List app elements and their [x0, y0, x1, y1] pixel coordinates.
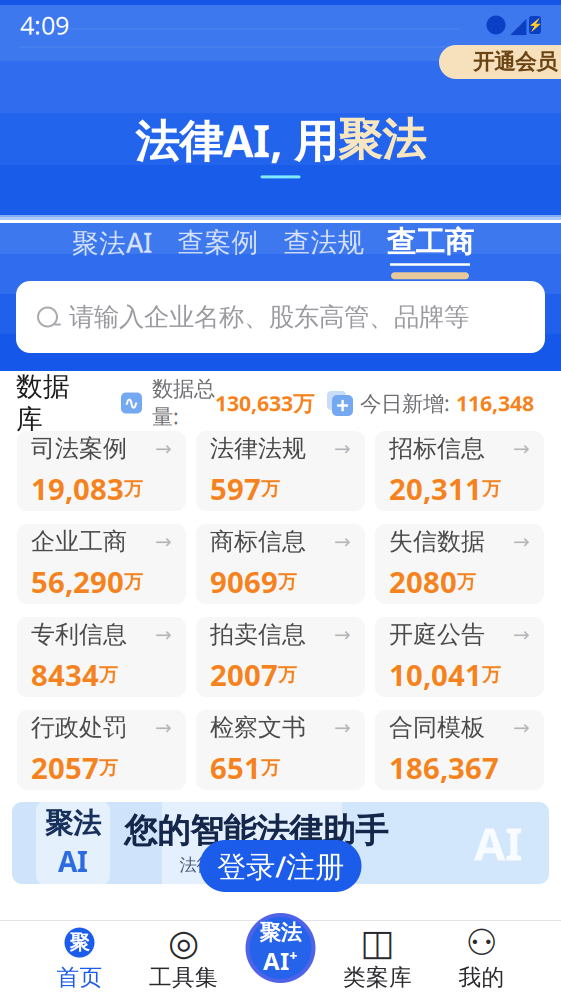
- button[interactable]: 检察文书: [196, 710, 365, 790]
- staticText: ∿: [123, 392, 139, 414]
- staticText: 数据总量:: [152, 376, 215, 430]
- staticText: ◎: [168, 922, 199, 963]
- staticText: 8434: [31, 655, 99, 694]
- button[interactable]: 查法规: [274, 226, 374, 278]
- staticText: →: [513, 716, 530, 739]
- button[interactable]: 合同模板: [375, 710, 544, 790]
- staticText: 今日新增:: [360, 389, 456, 417]
- staticText: 聚法: [338, 113, 426, 167]
- staticText: 企业工商: [31, 527, 127, 556]
- button[interactable]: ⚇: [429, 922, 533, 996]
- staticText: 专利信息: [31, 620, 127, 649]
- staticText: 56,290: [31, 562, 124, 601]
- staticText: →: [334, 623, 351, 646]
- staticText: 请输入企业名称、股东高管、品牌等: [69, 301, 469, 332]
- staticText: 查法规: [283, 226, 364, 259]
- staticText: 开通会员: [473, 49, 557, 75]
- staticText: +: [336, 390, 349, 420]
- staticText: 19,083: [31, 469, 124, 508]
- button[interactable]: 司法案例: [17, 431, 186, 511]
- button[interactable]: 拍卖信息: [196, 617, 365, 697]
- button[interactable]: 聚法: [12, 802, 549, 884]
- staticText: →: [155, 437, 172, 460]
- button[interactable]: 行政处罚: [17, 710, 186, 790]
- staticText: →: [513, 437, 530, 460]
- staticText: 失信数据: [389, 527, 485, 556]
- staticText: →: [155, 530, 172, 553]
- staticText: 2080: [389, 562, 457, 601]
- button[interactable]: 商标信息: [196, 524, 365, 604]
- staticText: 法律法规: [210, 434, 306, 463]
- button[interactable]: 查工商: [380, 224, 480, 280]
- button[interactable]: 法律法规: [196, 431, 365, 511]
- staticText: 法律人的智能工作台: [179, 854, 332, 876]
- staticText: ◢: [510, 13, 526, 37]
- staticText: 4:09: [20, 8, 69, 42]
- staticText: →: [334, 530, 351, 553]
- staticText: 186,367: [389, 748, 499, 787]
- staticText: 类案库: [343, 964, 412, 991]
- staticText: →: [334, 716, 351, 739]
- button[interactable]: 企业工商: [17, 524, 186, 604]
- staticText: 聚: [69, 930, 89, 955]
- button[interactable]: 登录/注册: [199, 840, 361, 892]
- button[interactable]: 聚: [27, 922, 131, 996]
- staticText: 拍卖信息: [210, 620, 306, 649]
- staticText: →: [334, 437, 351, 460]
- staticText: 招标信息: [389, 434, 485, 463]
- staticText: 检察文书: [210, 713, 306, 742]
- staticText: 万: [457, 570, 476, 593]
- staticText: 万: [482, 477, 501, 500]
- button[interactable]: 开通会员: [439, 45, 561, 79]
- staticText: 万: [261, 756, 280, 779]
- staticText: 651: [210, 748, 261, 787]
- staticText: 9069: [210, 562, 278, 601]
- staticText: →: [155, 623, 172, 646]
- staticText: 10,041: [389, 655, 482, 694]
- staticText: 2057: [31, 748, 99, 787]
- staticText: →: [513, 530, 530, 553]
- button[interactable]: 开庭公告: [375, 617, 544, 697]
- staticText: 您的智能法律助手: [124, 810, 388, 851]
- staticText: 130,633万: [215, 389, 314, 417]
- staticText: 行政处罚: [31, 713, 127, 742]
- button[interactable]: 失信数据: [375, 524, 544, 604]
- staticText: 法律AI, 用: [135, 111, 338, 169]
- button[interactable]: 请输入企业名称、股东高管、品牌等: [16, 281, 545, 353]
- staticText: 万: [99, 756, 118, 779]
- staticText: AI: [58, 843, 88, 880]
- staticText: →: [155, 716, 172, 739]
- staticText: 聚法: [259, 919, 301, 946]
- staticText: 查工商: [386, 224, 473, 260]
- staticText: 合同模板: [389, 713, 485, 742]
- button[interactable]: ◎: [131, 922, 235, 996]
- staticText: 116,348: [456, 389, 534, 417]
- staticText: AI: [474, 813, 523, 873]
- button[interactable]: 聚法 AI+: [240, 908, 320, 988]
- staticText: 司法案例: [31, 434, 127, 463]
- staticText: 万: [99, 663, 118, 686]
- button[interactable]: 专利信息: [17, 617, 186, 697]
- staticText: 万: [278, 663, 297, 686]
- staticText: ◫: [360, 922, 394, 963]
- staticText: ⚇: [465, 922, 497, 963]
- staticText: 我的: [458, 964, 504, 991]
- staticText: 查案例: [177, 226, 258, 259]
- staticText: 万: [278, 570, 297, 593]
- staticText: 数据库: [16, 370, 70, 436]
- staticText: ▾: [491, 14, 501, 36]
- staticText: 开庭公告: [389, 620, 485, 649]
- button[interactable]: 招标信息: [375, 431, 544, 511]
- staticText: 登录/注册: [217, 846, 344, 885]
- button[interactable]: 聚法AI: [62, 225, 162, 279]
- staticText: 2007: [210, 655, 278, 694]
- staticText: 商标信息: [210, 527, 306, 556]
- staticText: 万: [261, 477, 280, 500]
- staticText: 聚法AI: [72, 225, 152, 260]
- staticText: AI⁺: [263, 945, 298, 977]
- staticText: 万: [124, 570, 143, 593]
- staticText: 万: [482, 663, 501, 686]
- button[interactable]: ◫: [325, 922, 429, 996]
- button[interactable]: 查案例: [168, 226, 268, 278]
- staticText: 20,311: [389, 469, 482, 508]
